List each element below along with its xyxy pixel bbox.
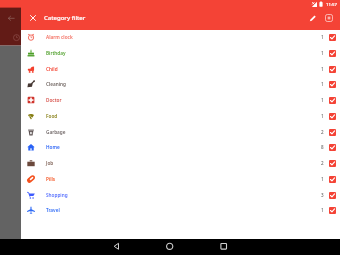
button[interactable]: Pills <box>21 171 340 187</box>
button[interactable]: Toggle Home <box>329 144 336 151</box>
button[interactable]: Toggle Garbage <box>329 129 336 136</box>
button[interactable]: Toggle Doctor <box>329 97 336 104</box>
button[interactable]: Toggle Birthday <box>329 50 336 57</box>
button[interactable]: Toggle Cleaning <box>329 81 336 88</box>
staticText: 11:57 <box>326 1 337 7</box>
button[interactable]: Job <box>21 155 340 171</box>
staticText: Alarm clock <box>46 34 73 40</box>
button[interactable]: Birthday <box>21 45 340 61</box>
button[interactable]: Select all <box>321 10 337 26</box>
staticText: 8 <box>321 144 324 150</box>
button[interactable]: Travel <box>21 202 340 218</box>
button[interactable]: Garbage <box>21 124 340 140</box>
button[interactable]: Toggle Shopping <box>329 192 336 199</box>
staticText: Doctor <box>46 97 62 103</box>
button[interactable]: Alarm clock <box>21 29 340 45</box>
staticText: Food <box>46 113 58 119</box>
staticText: 1 <box>321 97 324 103</box>
button[interactable]: Edit <box>304 10 320 26</box>
button[interactable]: Toggle Food <box>329 113 336 120</box>
staticText: 1 <box>321 113 324 119</box>
button[interactable]: Toggle Pills <box>329 176 336 183</box>
staticText: Job <box>46 160 54 166</box>
staticText: 3 <box>321 192 324 198</box>
button[interactable]: Cleaning <box>21 76 340 92</box>
staticText: Category filter <box>44 14 86 22</box>
button[interactable]: Doctor <box>21 92 340 108</box>
staticText: Home <box>46 144 60 150</box>
button[interactable]: Close <box>25 10 41 26</box>
staticText: Shopping <box>46 192 68 198</box>
button[interactable]: Toggle Alarm clock <box>329 34 336 41</box>
staticText: 1 <box>321 81 324 87</box>
button[interactable]: Toggle Child <box>329 66 336 73</box>
staticText: Cleaning <box>46 81 67 87</box>
button[interactable]: Food <box>21 108 340 124</box>
staticText: Birthday <box>46 50 66 56</box>
staticText: 2 <box>321 160 324 166</box>
staticText: Child <box>46 66 58 72</box>
staticText: Travel <box>46 207 60 213</box>
staticText: Pills <box>46 176 56 182</box>
staticText: 2 <box>321 129 324 135</box>
staticText: Garbage <box>46 129 66 135</box>
button[interactable]: Home <box>21 139 340 155</box>
staticText: 1 <box>321 176 324 182</box>
button[interactable]: Toggle Travel <box>329 207 336 214</box>
button[interactable]: Toggle Job <box>329 160 336 167</box>
staticText: 1 <box>321 34 324 40</box>
staticText: 1 <box>321 66 324 72</box>
staticText: 1 <box>321 50 324 56</box>
staticText: 1 <box>321 207 324 213</box>
button[interactable]: Shopping <box>21 187 340 203</box>
button[interactable]: Child <box>21 61 340 77</box>
